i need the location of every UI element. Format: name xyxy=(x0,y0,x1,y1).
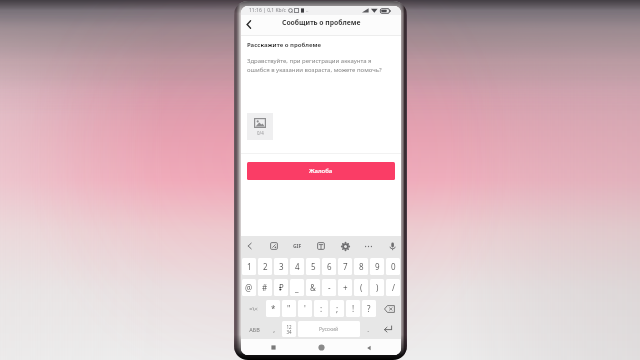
staticText: " xyxy=(287,303,291,314)
staticText: ( xyxy=(360,282,363,293)
button[interactable]: - xyxy=(322,279,336,296)
staticText: 12 34 xyxy=(286,324,292,335)
button[interactable]: 2 xyxy=(258,258,272,275)
button[interactable]: Жалоба xyxy=(247,162,395,180)
staticText: Жалоба xyxy=(309,167,333,175)
button[interactable]: Русский xyxy=(298,321,360,337)
button[interactable]: Attach image xyxy=(247,113,273,140)
staticText: ₽ xyxy=(279,282,284,293)
staticText: , xyxy=(273,325,275,334)
staticText: 4 xyxy=(295,261,300,272)
staticText: ·· xyxy=(306,8,309,14)
staticText: 1 xyxy=(247,261,252,272)
button[interactable]: 9 xyxy=(370,258,384,275)
button[interactable]: # xyxy=(258,279,272,296)
staticText: : xyxy=(320,303,323,314)
button[interactable]: 5 xyxy=(306,258,320,275)
staticText: Расскажите о проблеме xyxy=(247,41,321,49)
staticText: 11:16 | 0,1 Kb/c xyxy=(249,7,286,14)
button[interactable]: ( xyxy=(354,279,368,296)
button[interactable]: ' xyxy=(298,300,312,317)
staticText: =\< xyxy=(249,305,258,312)
staticText: * xyxy=(271,303,276,314)
button[interactable]: + xyxy=(338,279,352,296)
staticText: ' xyxy=(304,303,306,314)
staticText: АБВ xyxy=(249,326,260,333)
button[interactable]: / xyxy=(386,279,400,296)
button[interactable]: @ xyxy=(242,279,256,296)
staticText: Сообщить о проблеме xyxy=(282,18,361,27)
button[interactable]: more xyxy=(361,239,375,253)
staticText: 2 xyxy=(263,261,268,272)
staticText: 9 xyxy=(375,261,380,272)
staticText: GIF xyxy=(293,243,302,250)
button[interactable]: 0 xyxy=(386,258,400,275)
button[interactable]: 8 xyxy=(354,258,368,275)
staticText: / xyxy=(392,282,395,293)
button[interactable]: mic xyxy=(385,239,399,253)
button[interactable]: 6 xyxy=(322,258,336,275)
button[interactable]: 4 xyxy=(290,258,304,275)
staticText: 6 xyxy=(327,261,332,272)
staticText: # xyxy=(262,282,268,293)
button[interactable]: Backspace xyxy=(377,298,401,319)
button[interactable]: =\< xyxy=(241,298,265,319)
staticText: + xyxy=(343,282,348,293)
staticText: ! xyxy=(352,303,355,314)
button[interactable]: gear xyxy=(338,239,352,253)
button[interactable]: _ xyxy=(290,279,304,296)
button[interactable]: sticker xyxy=(314,239,328,253)
button[interactable]: : xyxy=(314,300,328,317)
staticText: _ xyxy=(295,282,299,293)
staticText: - xyxy=(328,282,331,293)
staticText: 3 xyxy=(279,261,284,272)
button[interactable]: " xyxy=(282,300,296,317)
button[interactable]: 1 xyxy=(242,258,256,275)
button[interactable]: Recents xyxy=(267,341,280,354)
button[interactable]: ) xyxy=(370,279,384,296)
staticText: 0 xyxy=(391,261,396,272)
button[interactable]: Home xyxy=(315,341,328,354)
staticText: ; xyxy=(336,303,339,314)
staticText: ? xyxy=(367,303,371,314)
button[interactable]: 3 xyxy=(274,258,288,275)
button[interactable]: gif xyxy=(290,239,304,253)
button[interactable]: & xyxy=(306,279,320,296)
staticText: 5 xyxy=(311,261,316,272)
button[interactable]: Back xyxy=(241,17,255,31)
staticText: ) xyxy=(376,282,379,293)
button[interactable]: clip xyxy=(267,239,281,253)
button[interactable]: ₽ xyxy=(274,279,288,296)
staticText: 7 xyxy=(343,261,348,272)
button[interactable]: * xyxy=(266,300,280,317)
button[interactable]: . xyxy=(361,319,375,339)
staticText: Русский xyxy=(319,326,339,333)
button[interactable]: Enter xyxy=(375,319,401,339)
button[interactable]: Back xyxy=(362,341,375,354)
staticText: . xyxy=(367,325,369,334)
staticText: & xyxy=(310,282,316,293)
button[interactable]: 7 xyxy=(338,258,352,275)
staticText: 8 xyxy=(359,261,364,272)
button[interactable]: АБВ xyxy=(241,319,267,339)
button[interactable]: ! xyxy=(346,300,360,317)
staticText: 0/4 xyxy=(257,130,264,136)
button[interactable]: ? xyxy=(362,300,376,317)
button[interactable]: back xyxy=(243,239,257,253)
button[interactable]: ; xyxy=(330,300,344,317)
button[interactable]: 12 34 xyxy=(282,321,296,337)
button[interactable]: , xyxy=(267,319,281,339)
staticText: Здравствуйте, при регистрации аккаунта я… xyxy=(247,57,383,74)
staticText: @ xyxy=(245,282,253,293)
